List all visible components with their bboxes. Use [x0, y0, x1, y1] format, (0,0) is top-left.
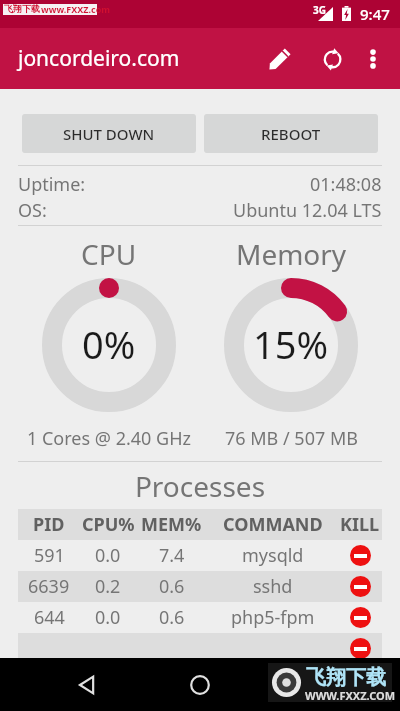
staticText: 6639 [28, 574, 70, 599]
staticText: 0.2 [95, 574, 121, 599]
staticText: 3G [313, 3, 326, 17]
staticText: 591 [34, 543, 65, 568]
staticText: 0.0 [95, 605, 121, 630]
button[interactable]: Kill php5-fpm [350, 607, 371, 628]
staticText: 1 Cores @ 2.40 GHz [27, 426, 191, 451]
staticText: 76 MB / 507 MB [225, 426, 358, 451]
staticText: REBOOT [261, 124, 321, 144]
staticText: 7.4 [159, 543, 185, 568]
staticText: 0% [82, 318, 136, 370]
staticText: WWW.FXXZ.COM [305, 688, 396, 703]
staticText: Memory [236, 235, 347, 273]
staticText: 0.6 [159, 605, 185, 630]
staticText: 9:47 [360, 4, 390, 24]
staticText: 0.6 [159, 574, 185, 599]
staticText: Uptime: [18, 172, 86, 197]
button[interactable]: SHUT DOWN [22, 114, 196, 153]
button[interactable]: Recents [287, 659, 339, 711]
staticText: MEM% [141, 512, 202, 537]
button[interactable]: Kill x [350, 638, 371, 659]
button[interactable]: Edit [256, 35, 304, 83]
staticText: www.FXXZ.com [41, 3, 111, 14]
staticText: 飞翔下载 [306, 665, 386, 690]
staticText: OS: [18, 198, 47, 223]
staticText: joncordeiro.com [18, 44, 180, 73]
button[interactable]: More options [349, 35, 397, 83]
staticText: mysqld [242, 543, 304, 568]
button[interactable]: Kill mysqld [350, 545, 371, 566]
staticText: SHUT DOWN [63, 124, 155, 144]
staticText: 飞翔下载 [4, 3, 40, 14]
staticText: Ubuntu 12.04 LTS [233, 198, 382, 223]
staticText: 15% [253, 318, 329, 370]
staticText: sshd [253, 574, 293, 599]
button[interactable]: Home [174, 659, 226, 711]
button[interactable]: Refresh [309, 35, 357, 83]
staticText: 0.0 [95, 543, 121, 568]
button[interactable]: Back [61, 659, 113, 711]
staticText: php5-fpm [231, 605, 315, 630]
staticText: COMMAND [223, 512, 323, 537]
button[interactable]: REBOOT [204, 114, 378, 153]
staticText: CPU% [82, 512, 135, 537]
staticText: 01:48:08 [310, 172, 382, 197]
button[interactable]: Kill sshd [350, 576, 371, 597]
staticText: CPU [81, 235, 137, 273]
staticText: 644 [34, 605, 65, 630]
staticText: Processes [18, 467, 382, 505]
staticText: KILL [340, 512, 380, 537]
staticText: PID [33, 512, 65, 537]
